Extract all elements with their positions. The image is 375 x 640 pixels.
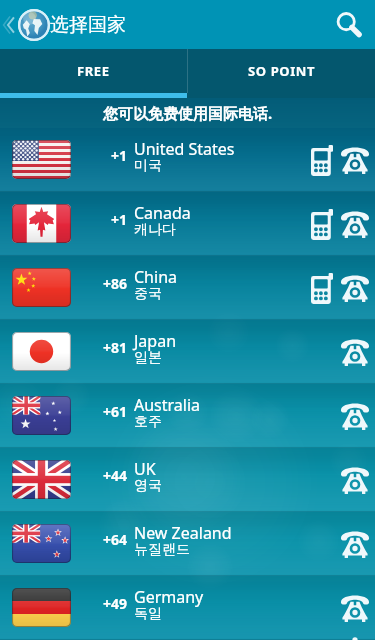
button[interactable]: Landline call	[338, 204, 371, 244]
staticText: +64	[103, 530, 128, 549]
staticText: New Zealand	[134, 522, 232, 544]
staticText: +81	[103, 338, 128, 357]
staticText: FREE	[77, 62, 110, 80]
staticText: +1	[111, 210, 128, 229]
staticText: 영국	[134, 477, 162, 495]
button[interactable]: Landline call	[338, 524, 371, 564]
button[interactable]: Landline call	[338, 268, 371, 308]
staticText: +44	[103, 466, 128, 485]
button[interactable]: Back	[0, 0, 50, 49]
button[interactable]: Landline call	[338, 396, 371, 436]
button[interactable]: +81	[0, 320, 375, 384]
staticText: 选择国家	[50, 13, 126, 37]
staticText: China	[134, 266, 177, 288]
staticText: 您可以免费使用国际电话.	[103, 103, 273, 123]
staticText: Canada	[134, 202, 191, 224]
button[interactable]: +64	[0, 512, 375, 576]
staticText: 중국	[134, 285, 162, 303]
button[interactable]: +44	[0, 448, 375, 512]
staticText: 미국	[134, 157, 162, 175]
staticText: United States	[134, 138, 235, 160]
staticText: 뉴질랜드	[134, 541, 190, 559]
staticText: +49	[103, 594, 128, 613]
button[interactable]: +1	[0, 128, 375, 192]
staticText: +1	[111, 146, 128, 165]
staticText: 독일	[134, 605, 162, 623]
button[interactable]: Landline call	[338, 140, 371, 180]
button[interactable]: Search	[323, 0, 375, 49]
staticText: UK	[134, 458, 156, 480]
staticText: 일본	[134, 349, 162, 367]
button[interactable]: FREE	[0, 49, 187, 93]
staticText: Australia	[134, 394, 201, 416]
staticText: 캐나다	[134, 221, 176, 239]
button[interactable]: +86	[0, 256, 375, 320]
staticText: Japan	[134, 330, 177, 352]
button[interactable]: SO POINT	[188, 49, 375, 93]
button[interactable]: +49	[0, 576, 375, 640]
staticText: SO POINT	[248, 62, 316, 80]
button[interactable]: Mobile call	[307, 204, 336, 244]
button[interactable]: +1	[0, 192, 375, 256]
button[interactable]: Landline call	[338, 588, 371, 628]
staticText: Germany	[134, 586, 204, 608]
button[interactable]: Mobile call	[307, 268, 336, 308]
staticText: +86	[103, 274, 128, 293]
button[interactable]: Mobile call	[307, 140, 336, 180]
staticText: 호주	[134, 413, 162, 431]
button[interactable]: Landline call	[338, 332, 371, 372]
button[interactable]: Landline call	[338, 460, 371, 500]
staticText: +61	[103, 402, 128, 421]
button[interactable]: +61	[0, 384, 375, 448]
